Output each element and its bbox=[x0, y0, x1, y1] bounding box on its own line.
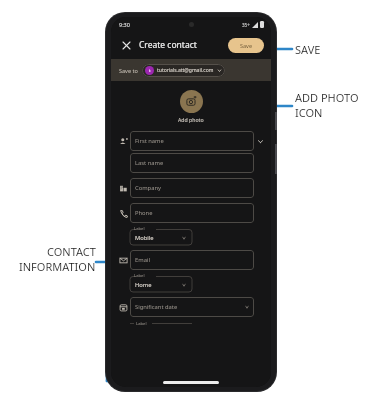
staticText: Save bbox=[240, 42, 253, 49]
button[interactable]: t bbox=[142, 64, 225, 77]
button[interactable]: Email bbox=[130, 250, 254, 270]
staticText: 9:30 bbox=[119, 21, 130, 28]
staticText: Create contact bbox=[139, 39, 197, 51]
button[interactable]: Phone bbox=[130, 203, 254, 223]
staticText: Label bbox=[134, 226, 145, 232]
staticText: INFORMATION bbox=[19, 259, 96, 274]
staticText: Save to bbox=[119, 67, 138, 74]
staticText: ADD PHOTO bbox=[295, 90, 359, 105]
staticText: SAVE bbox=[295, 42, 321, 57]
button[interactable]: Add photo bbox=[180, 90, 203, 113]
staticText: Mobile bbox=[135, 234, 154, 242]
button[interactable]: Company bbox=[130, 178, 254, 198]
staticText: Label bbox=[136, 321, 147, 327]
staticText: t bbox=[149, 68, 151, 73]
button[interactable]: First name bbox=[130, 131, 254, 151]
staticText: ICON bbox=[295, 105, 323, 120]
staticText: Label bbox=[134, 273, 145, 279]
button[interactable]: Last name bbox=[130, 153, 254, 173]
staticText: Last name bbox=[135, 159, 164, 167]
button[interactable]: Label bbox=[130, 273, 192, 292]
staticText: Significant date bbox=[135, 303, 178, 311]
staticText: Add photo bbox=[178, 116, 204, 123]
staticText: Home bbox=[135, 281, 152, 289]
staticText: 35+ bbox=[242, 22, 250, 28]
staticText: CONTACT bbox=[47, 244, 96, 259]
button[interactable]: Significant date bbox=[130, 297, 254, 317]
staticText: Phone bbox=[135, 209, 153, 217]
staticText: Company bbox=[135, 184, 161, 192]
button[interactable]: Label bbox=[130, 226, 192, 245]
staticText: First name bbox=[135, 137, 164, 145]
button[interactable]: Close bbox=[118, 37, 134, 53]
staticText: tutorials.att@gmail.com bbox=[157, 67, 214, 74]
staticText: Email bbox=[135, 256, 150, 264]
button[interactable]: Save bbox=[228, 38, 264, 53]
